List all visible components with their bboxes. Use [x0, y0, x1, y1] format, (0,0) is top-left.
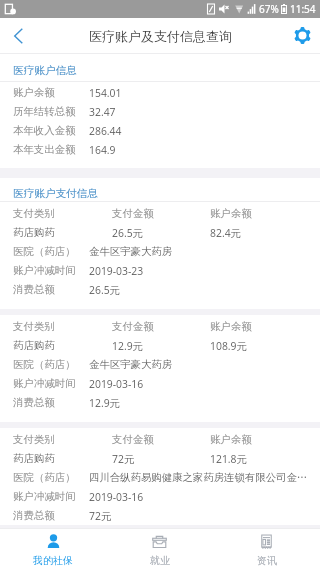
staticText: 账户余额 [210, 320, 252, 333]
staticText: 金牛区宇豪大药房 [89, 245, 173, 258]
staticText: 本年支出金额 [13, 143, 76, 156]
staticText: 108.9元 [210, 339, 247, 353]
staticText: 72元 [112, 452, 135, 466]
staticText: 12.9元 [112, 339, 144, 353]
staticText: 消费总额 [13, 509, 55, 522]
staticText: 支付类别 [13, 207, 55, 220]
staticText: 支付金额 [112, 320, 154, 333]
button[interactable]: Settings [284, 18, 320, 53]
staticText: 支付金额 [112, 433, 154, 446]
staticText: 本年收入金额 [13, 124, 76, 137]
staticText: 2019-03-23 [89, 264, 144, 278]
staticText: 67% [259, 2, 279, 16]
staticText: 26.5元 [112, 226, 144, 240]
staticText: 医疗账户信息 [13, 64, 77, 77]
staticText: 消费总额 [13, 396, 55, 409]
staticText: 金牛区宇豪大药房 [89, 358, 173, 371]
staticText: 82.4元 [210, 226, 242, 240]
staticText: 286.44 [89, 124, 122, 138]
staticText: 账户余额 [210, 433, 252, 446]
staticText: 支付类别 [13, 320, 55, 333]
staticText: 11:54 [290, 2, 316, 16]
staticText: 医院（药店） [13, 245, 76, 258]
staticText: 消费总额 [13, 283, 55, 296]
staticText: 账户冲减时间 [13, 490, 76, 503]
staticText: 账户冲减时间 [13, 377, 76, 390]
staticText: 72元 [89, 509, 112, 523]
staticText: 2019-03-16 [89, 490, 144, 504]
button[interactable]: 资讯 [213, 529, 320, 567]
button[interactable]: 我的社保 [0, 529, 106, 567]
staticText: 账户余额 [13, 86, 55, 99]
staticText: 164.9 [89, 143, 116, 157]
staticText: 药店购药 [13, 452, 55, 465]
staticText: 32.47 [89, 105, 116, 119]
staticText: 医疗账户支付信息 [13, 187, 98, 200]
staticText: 账户余额 [210, 207, 252, 220]
staticText: 支付金额 [112, 207, 154, 220]
staticText: 我的社保 [33, 554, 73, 567]
button[interactable]: Back [0, 18, 36, 53]
staticText: 资讯 [257, 554, 277, 567]
staticText: 2019-03-16 [89, 377, 144, 391]
staticText: 医疗账户及支付信息查询 [89, 28, 232, 44]
staticText: 就业 [150, 554, 170, 567]
staticText: 医院（药店） [13, 471, 76, 484]
staticText: 26.5元 [89, 283, 121, 297]
staticText: 121.8元 [210, 452, 247, 466]
staticText: 账户冲减时间 [13, 264, 76, 277]
staticText: 医院（药店） [13, 358, 76, 371]
staticText: 药店购药 [13, 226, 55, 239]
staticText: 154.01 [89, 86, 122, 100]
staticText: 药店购药 [13, 339, 55, 352]
staticText: 历年结转总额 [13, 105, 76, 118]
staticText: 四川合纵药易购健康之家药房连锁有限公司金牛店 [89, 471, 313, 484]
staticText: 12.9元 [89, 396, 121, 410]
staticText: 支付类别 [13, 433, 55, 446]
button[interactable]: 就业 [106, 529, 213, 567]
